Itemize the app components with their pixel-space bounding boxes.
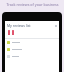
button[interactable]: More options (54, 24, 57, 27)
button[interactable]: Track reviews of your business (0, 0, 64, 12)
button[interactable] (5, 53, 59, 60)
button[interactable] (5, 39, 59, 46)
staticText: Track reviews of your business (6, 2, 59, 7)
button[interactable] (5, 46, 59, 53)
button[interactable]: Story (8, 30, 10, 35)
staticText: My reviews list (7, 23, 31, 28)
button[interactable]: Story (12, 30, 14, 35)
